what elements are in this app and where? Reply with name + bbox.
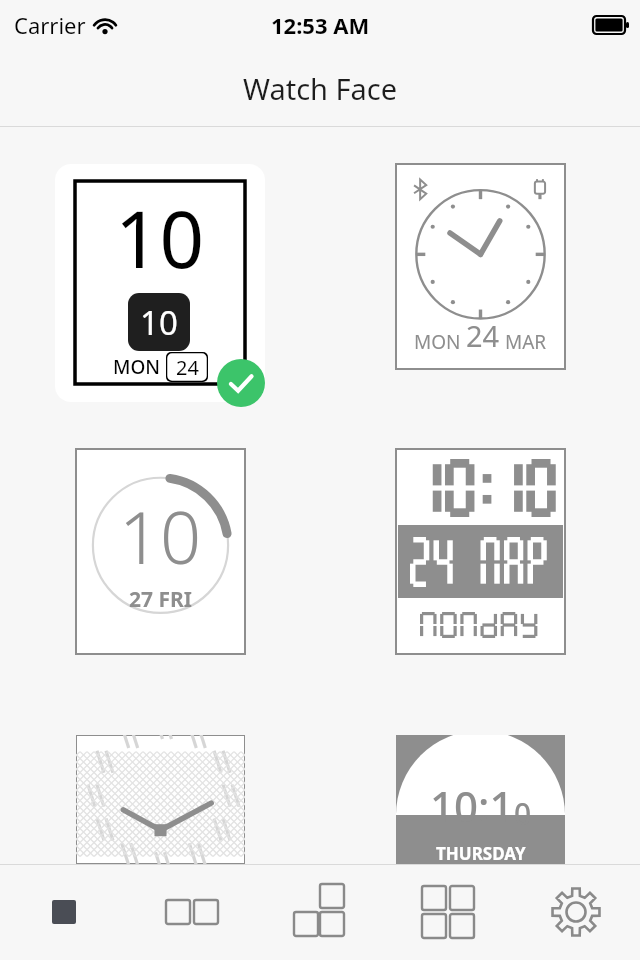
staticText: MAR bbox=[505, 329, 547, 355]
staticText: 10 bbox=[140, 300, 178, 345]
staticText: THURSDAY bbox=[436, 842, 526, 864]
button[interactable]: Three panes bbox=[256, 864, 384, 960]
button[interactable]: 10:1 bbox=[396, 735, 565, 864]
button[interactable]: Settings bbox=[512, 864, 640, 960]
button[interactable]: Four panes bbox=[384, 864, 512, 960]
staticText: 10:1 bbox=[430, 777, 514, 834]
staticText: 27 FRI bbox=[129, 585, 192, 614]
button[interactable] bbox=[76, 735, 245, 864]
button[interactable]: 10 bbox=[76, 449, 245, 654]
staticText: 24 bbox=[466, 316, 500, 355]
button[interactable]: One pane bbox=[0, 864, 128, 960]
staticText: 10 bbox=[119, 487, 202, 585]
button[interactable]: 10 bbox=[55, 164, 265, 402]
button[interactable]: Two panes bbox=[128, 864, 256, 960]
staticText: MON bbox=[414, 329, 461, 355]
button[interactable] bbox=[396, 449, 565, 654]
button[interactable]: MON bbox=[396, 164, 565, 369]
staticText: MON bbox=[113, 354, 161, 380]
staticText: Carrier bbox=[14, 10, 86, 40]
staticText: 24 bbox=[176, 354, 199, 381]
staticText: 12:53 AM bbox=[271, 10, 370, 40]
staticText: 0 bbox=[514, 793, 532, 834]
other: Selected bbox=[217, 359, 265, 407]
staticText: 10 bbox=[115, 185, 205, 291]
staticText: Watch Face bbox=[243, 69, 398, 108]
